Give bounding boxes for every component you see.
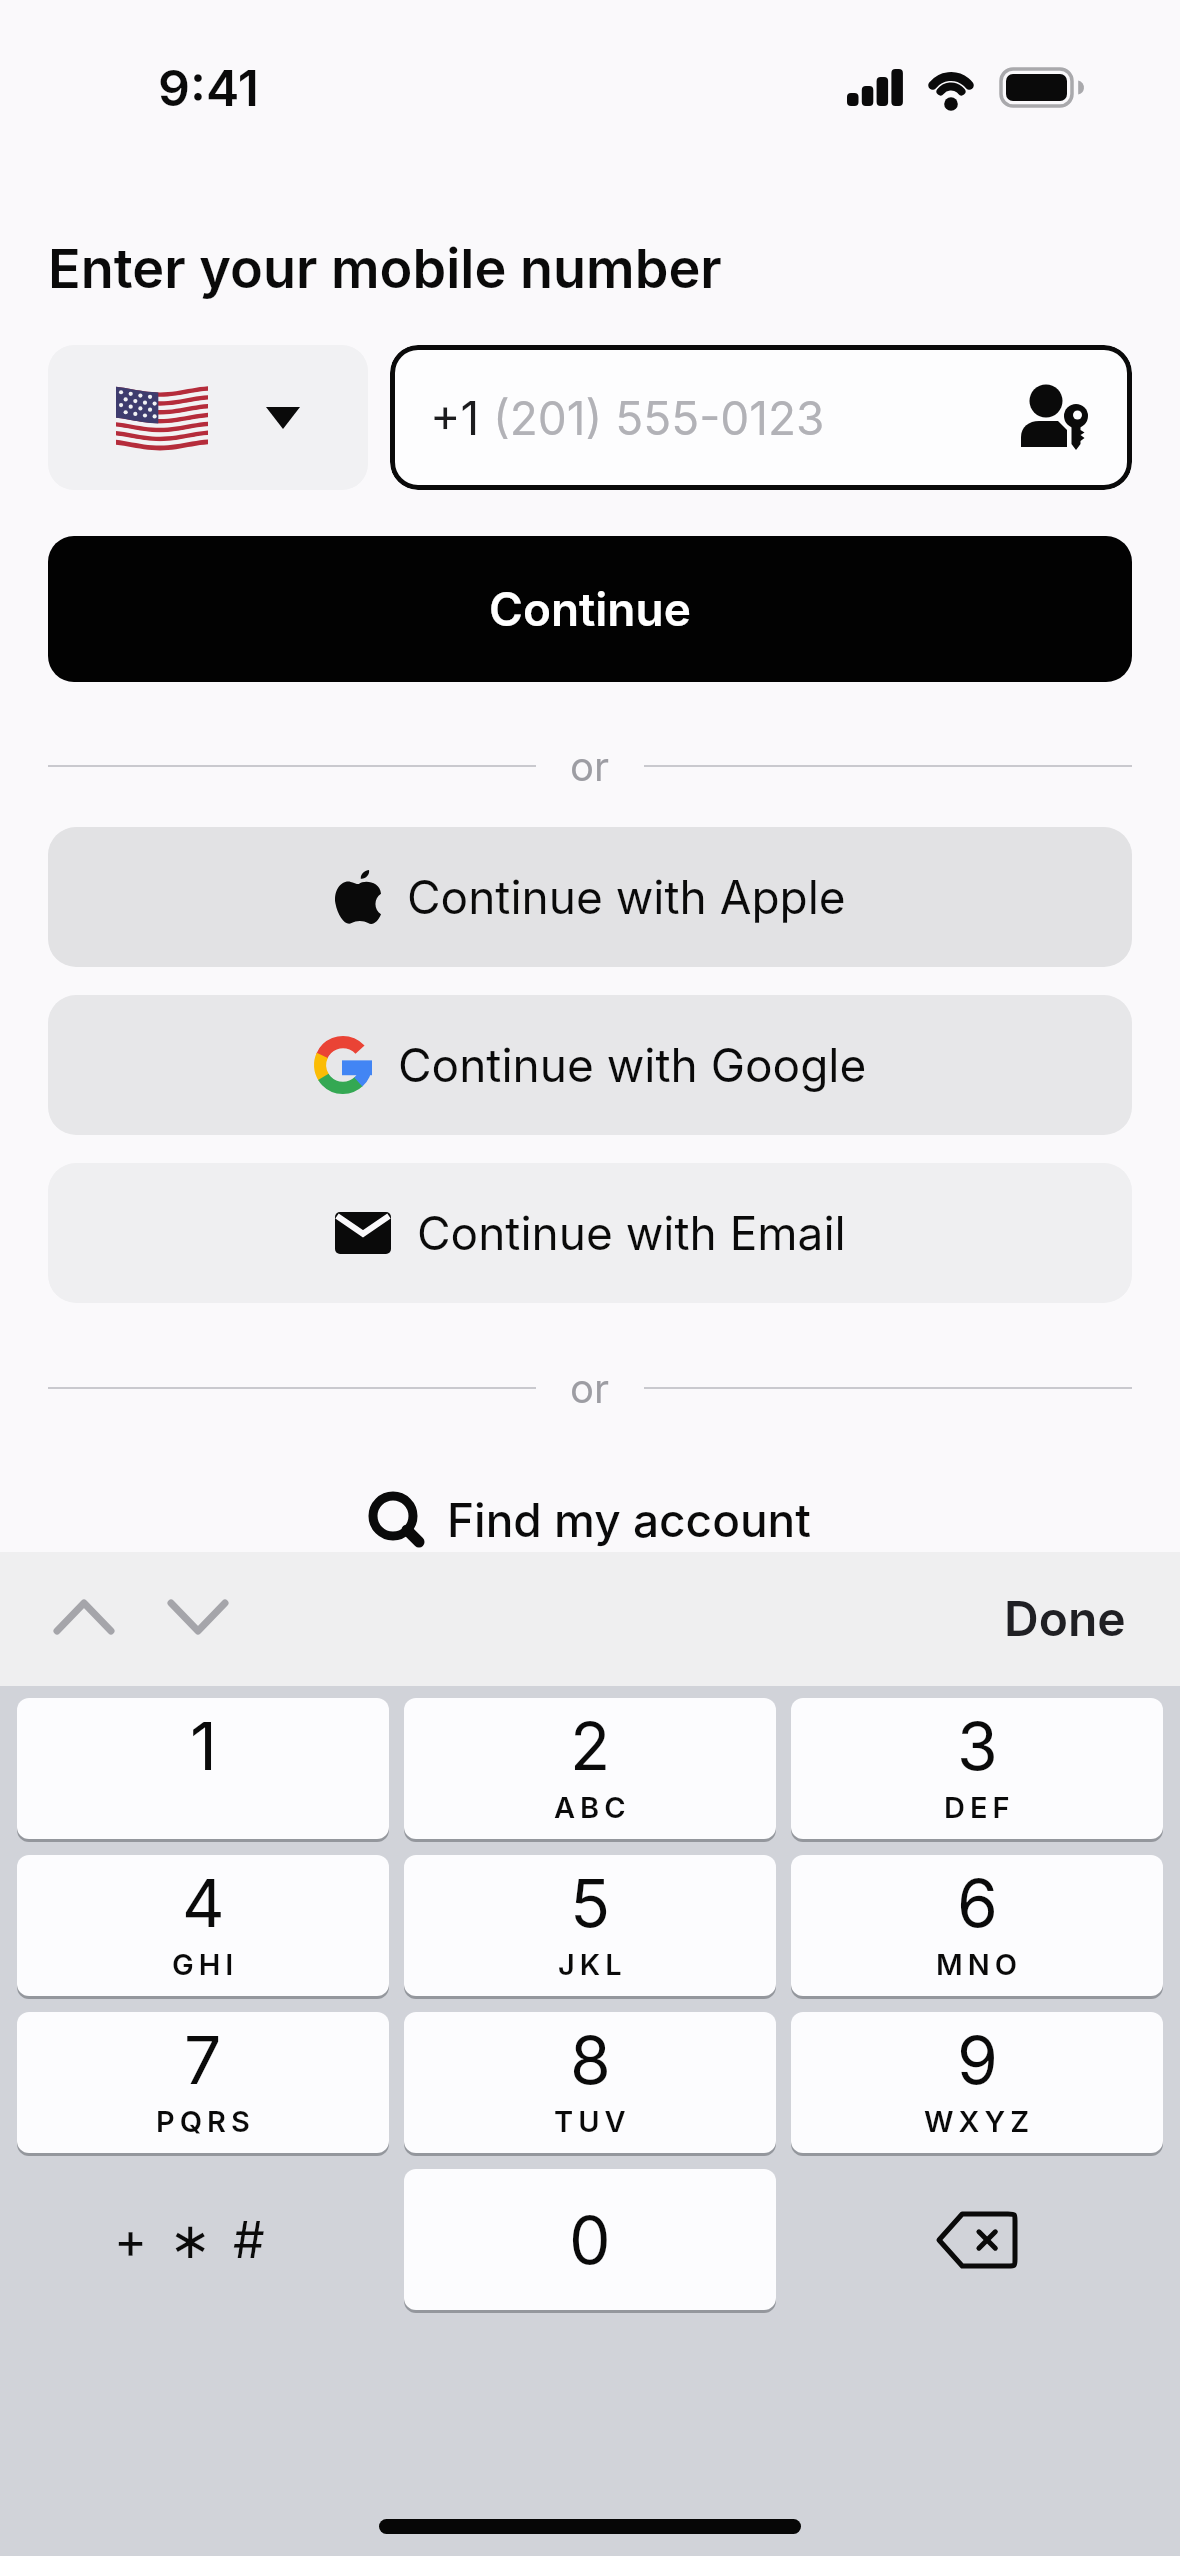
- staticText: 4: [182, 1863, 225, 1943]
- button[interactable]: +1: [390, 345, 1132, 490]
- button[interactable]: Find my account: [0, 1480, 1180, 1560]
- staticText: or: [570, 742, 610, 790]
- staticText: (201) 555-0123: [493, 390, 825, 446]
- staticText: Continue with Google: [398, 1037, 867, 1093]
- staticText: GHI: [172, 1947, 239, 1982]
- staticText: MNO: [936, 1947, 1023, 1982]
- staticText: Continue with Email: [417, 1205, 846, 1261]
- staticText: 6: [957, 1863, 998, 1943]
- button[interactable]: Continue with Email: [48, 1163, 1132, 1303]
- button[interactable]: 5: [404, 1855, 776, 1996]
- staticText: ABC: [554, 1790, 631, 1825]
- staticText: Find my account: [447, 1492, 811, 1548]
- staticText: DEF: [944, 1790, 1015, 1825]
- staticText: 8: [570, 2020, 611, 2100]
- staticText: 7: [184, 2020, 222, 2100]
- staticText: TUV: [554, 2104, 631, 2139]
- staticText: 1: [190, 1706, 217, 1786]
- staticText: 9: [957, 2020, 998, 2100]
- button[interactable]: 6: [791, 1855, 1163, 1996]
- button[interactable]: 0: [404, 2169, 776, 2310]
- button[interactable]: 8: [404, 2012, 776, 2153]
- button[interactable]: 2: [404, 1698, 776, 1839]
- staticText: Continue: [489, 581, 691, 637]
- button[interactable]: 1: [17, 1698, 389, 1839]
- button[interactable]: Continue with Google: [48, 995, 1132, 1135]
- button[interactable]: [791, 2169, 1163, 2310]
- staticText: 9:41: [158, 58, 259, 118]
- button[interactable]: [44, 1584, 124, 1650]
- button[interactable]: + ∗ #: [5, 2169, 377, 2310]
- button[interactable]: 9: [791, 2012, 1163, 2153]
- staticText: PQRS: [156, 2104, 255, 2139]
- button[interactable]: [48, 345, 368, 490]
- staticText: 3: [957, 1706, 998, 1786]
- staticText: JKL: [558, 1947, 627, 1982]
- staticText: Continue with Apple: [407, 869, 846, 925]
- button[interactable]: [158, 1584, 238, 1650]
- button[interactable]: 3: [791, 1698, 1163, 1839]
- staticText: 2: [570, 1706, 611, 1786]
- staticText: Done: [1004, 1589, 1126, 1647]
- staticText: or: [570, 1364, 610, 1412]
- button[interactable]: 4: [17, 1855, 389, 1996]
- staticText: WXYZ: [924, 2104, 1035, 2139]
- staticText: +1: [430, 390, 493, 446]
- staticText: 0: [569, 2200, 611, 2280]
- button[interactable]: Continue: [48, 536, 1132, 682]
- button[interactable]: Continue with Apple: [48, 827, 1132, 967]
- staticText: 5: [570, 1863, 611, 1943]
- button[interactable]: 7: [17, 2012, 389, 2153]
- staticText: Enter your mobile number: [48, 236, 722, 301]
- button[interactable]: Done: [980, 1576, 1150, 1660]
- staticText: + ∗ #: [114, 2210, 269, 2270]
